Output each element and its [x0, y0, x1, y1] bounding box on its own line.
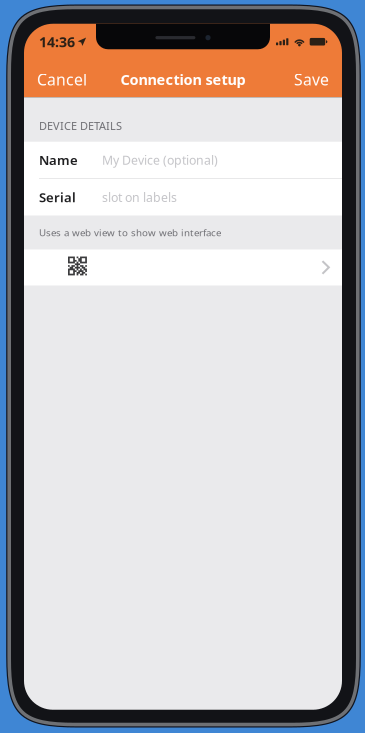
staticText: Save [294, 69, 329, 90]
staticText: DEVICE DETAILS [39, 118, 122, 133]
staticText: Cancel [37, 69, 87, 90]
button[interactable]: Save [285, 62, 338, 97]
staticText: Connection setup [120, 70, 245, 89]
staticText: slot on labels [102, 189, 177, 205]
staticText: 14:36 [39, 32, 75, 51]
staticText: Uses a web view to show web interface [39, 226, 221, 239]
staticText: My Device (optional) [102, 152, 218, 168]
button[interactable]: Cancel [28, 62, 96, 97]
button[interactable] [24, 249, 342, 285]
staticText: Name [39, 151, 78, 169]
staticText: Serial [39, 188, 76, 206]
